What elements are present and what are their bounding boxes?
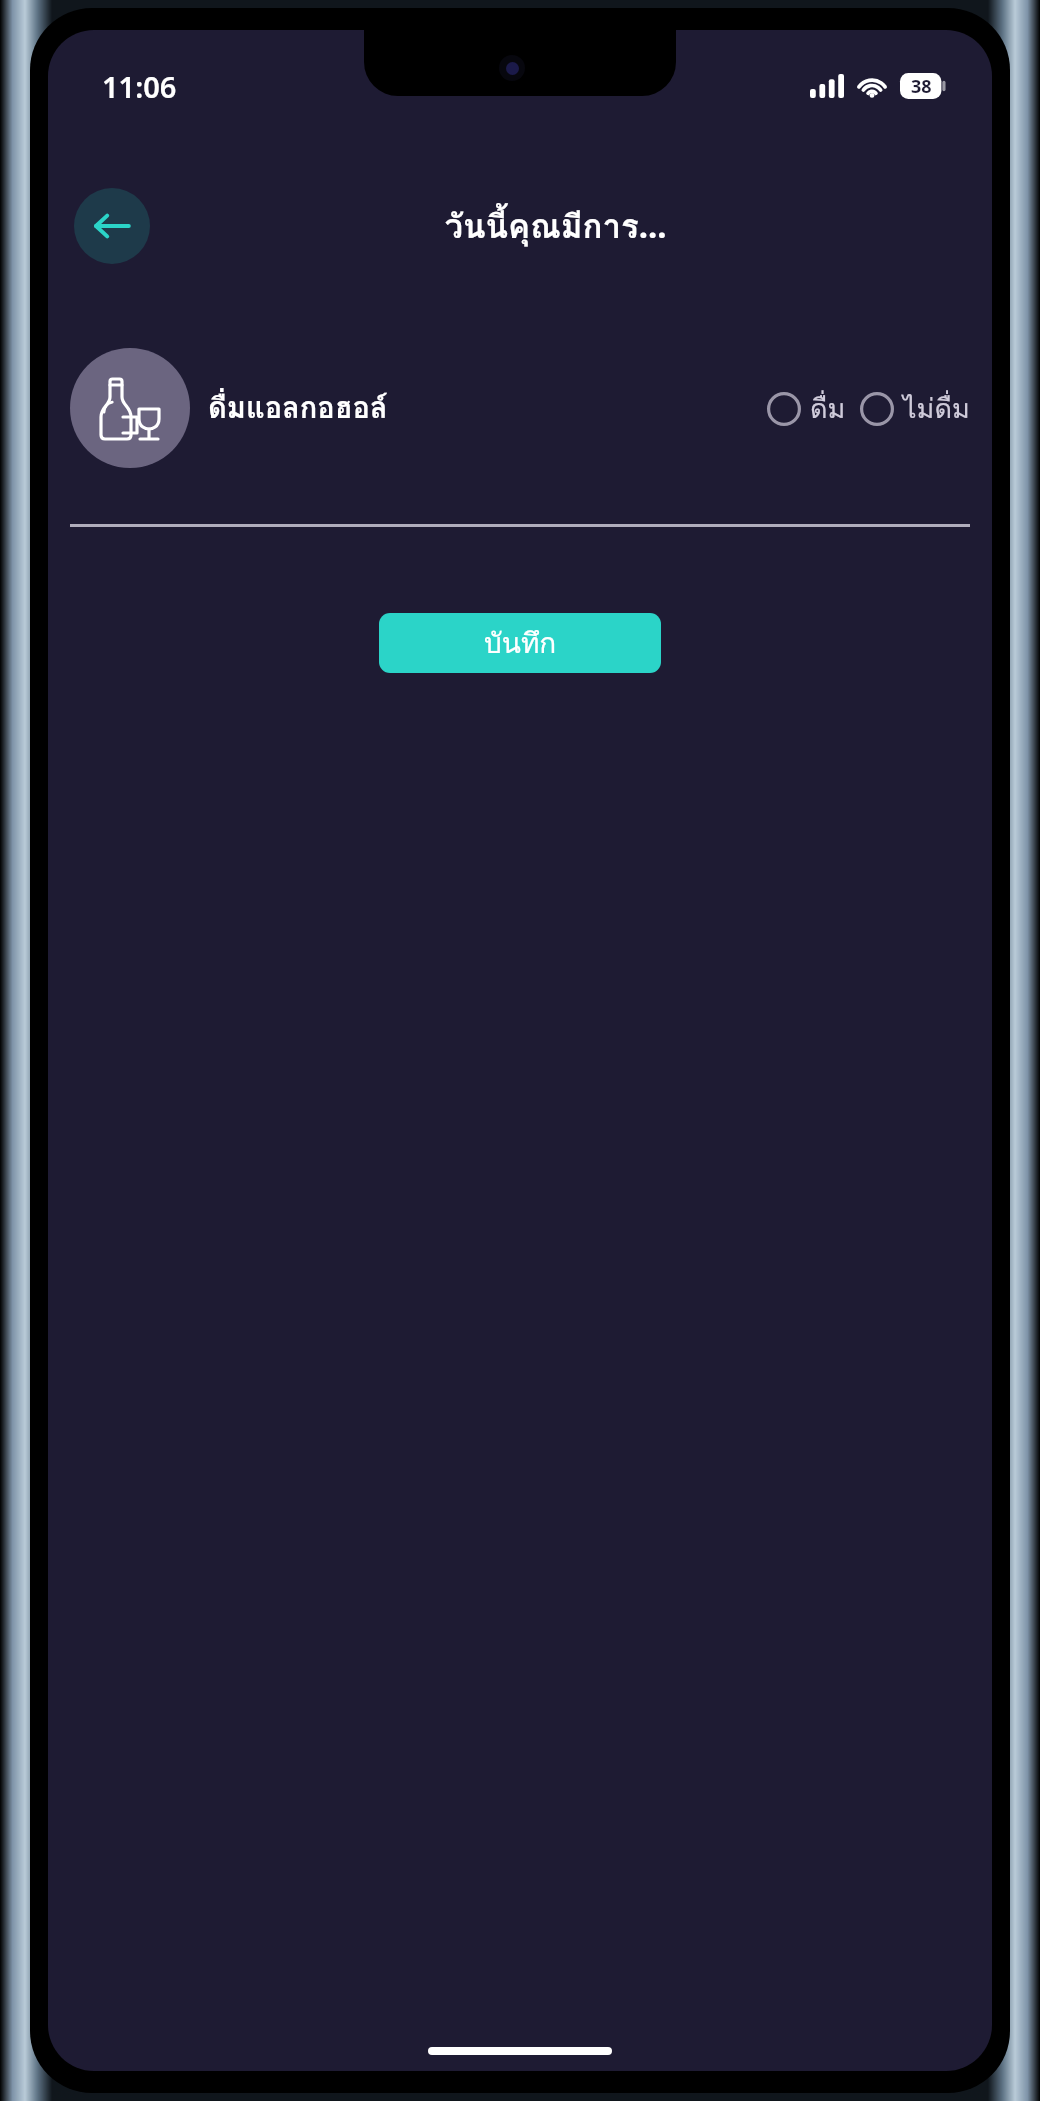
- staticText: วันนี้คุณมีการ...: [444, 200, 667, 252]
- button[interactable]: Back: [74, 188, 150, 264]
- staticText: ไม่ดื่ม: [903, 387, 970, 430]
- staticText: บันทึก: [484, 621, 557, 666]
- button[interactable]: ไม่ดื่ม: [860, 387, 970, 430]
- staticText: 11:06: [102, 67, 177, 106]
- staticText: ดื่ม: [810, 387, 846, 430]
- button[interactable]: บันทึก: [379, 613, 661, 673]
- staticText: ดื่มแอลกอฮอล์: [208, 385, 388, 431]
- button[interactable]: ดื่ม: [767, 387, 846, 430]
- staticText: 38: [911, 74, 932, 99]
